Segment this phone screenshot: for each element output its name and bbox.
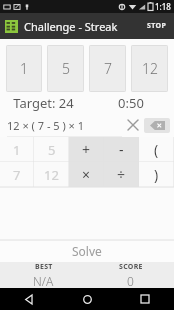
staticText: 0:50	[118, 94, 144, 112]
button[interactable]: BEST	[0, 262, 87, 288]
staticText: +	[82, 140, 91, 159]
staticText: 12	[142, 59, 158, 78]
staticText: ×	[82, 165, 91, 184]
staticText: STOP	[147, 21, 167, 31]
button[interactable]: 5	[34, 137, 69, 162]
staticText: 0	[127, 273, 134, 288]
staticText: 7	[104, 59, 112, 78]
staticText: SCORE	[119, 262, 143, 272]
button[interactable]: STOP	[140, 13, 174, 39]
button[interactable]: 1	[0, 137, 34, 162]
button[interactable]: 1	[6, 45, 42, 92]
staticText: Target: 24	[13, 94, 74, 112]
button[interactable]: Clear expression	[122, 113, 144, 137]
button[interactable]: SCORE	[87, 262, 174, 288]
button[interactable]: Back	[0, 288, 58, 310]
staticText: 1:18	[155, 1, 171, 12]
button[interactable]: ×	[69, 162, 104, 187]
staticText: -	[119, 140, 124, 159]
button[interactable]: -	[104, 137, 139, 162]
button[interactable]: Recent apps	[116, 288, 174, 310]
button[interactable]: 7	[89, 45, 126, 92]
button[interactable]: )	[139, 162, 174, 187]
staticText: Challenge - Streak	[24, 19, 118, 34]
button[interactable]: Home	[58, 288, 116, 310]
button[interactable]: 5	[47, 45, 84, 92]
staticText: Solve	[72, 243, 102, 259]
staticText: N/A	[33, 273, 54, 288]
staticText: 12 × ( 7 - 5 ) × 1	[7, 118, 85, 133]
staticText: BEST	[35, 262, 53, 272]
button[interactable]: 12	[131, 45, 168, 92]
staticText: )	[154, 165, 159, 184]
button[interactable]: ÷	[104, 162, 139, 187]
staticText: 5	[62, 59, 70, 78]
staticText: 5	[48, 141, 56, 159]
staticText: 1	[13, 141, 21, 159]
staticText: (	[154, 140, 159, 159]
button[interactable]: Backspace	[144, 118, 170, 133]
staticText: 1	[20, 59, 28, 78]
button[interactable]: +	[69, 137, 104, 162]
staticText: 12	[44, 166, 59, 184]
button[interactable]: 12	[34, 162, 69, 187]
staticText: 7	[13, 166, 21, 184]
button[interactable]: (	[139, 137, 174, 162]
button[interactable]: 7	[0, 162, 34, 187]
button[interactable]: Solve	[0, 240, 174, 262]
staticText: ÷	[117, 165, 126, 184]
